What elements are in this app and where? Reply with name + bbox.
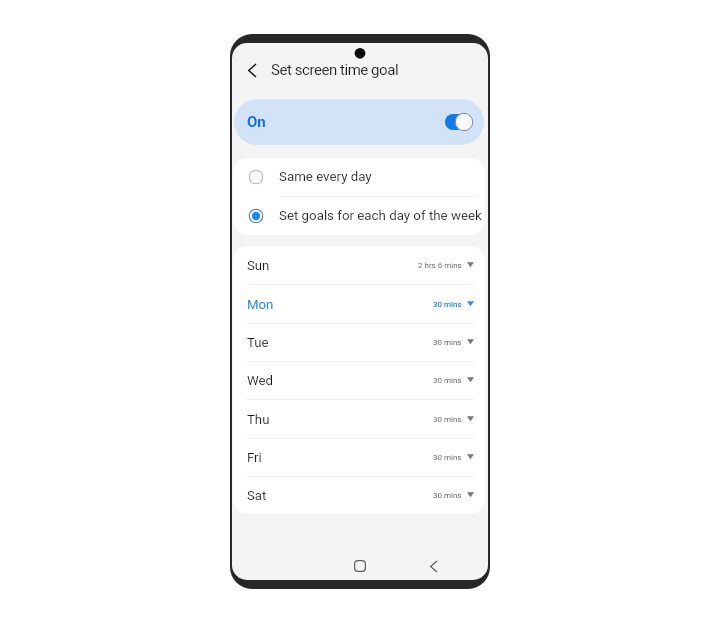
- staticText: 30 mins: [433, 338, 462, 347]
- button[interactable]: Navigate up: [239, 57, 265, 83]
- button[interactable]: Home: [347, 553, 373, 579]
- button[interactable]: Wed: [233, 362, 485, 399]
- button[interactable]: Thu: [233, 400, 485, 438]
- staticText: 30 mins: [433, 376, 462, 385]
- staticText: Thu: [247, 412, 270, 427]
- staticText: Fri: [247, 450, 262, 465]
- button[interactable]: Set goals for each day of the week: [233, 197, 485, 235]
- button[interactable]: Sun: [233, 246, 485, 284]
- staticText: Wed: [247, 373, 273, 388]
- staticText: Same every day: [279, 169, 372, 185]
- staticText: Sun: [247, 258, 270, 273]
- staticText: Set goals for each day of the week: [279, 208, 482, 224]
- staticText: Sat: [247, 488, 267, 503]
- staticText: On: [247, 113, 266, 131]
- staticText: 30 mins: [433, 453, 462, 462]
- staticText: Set screen time goal: [271, 61, 399, 79]
- button[interactable]: Same every day: [233, 158, 485, 196]
- button[interactable]: Fri: [233, 439, 485, 476]
- button[interactable]: Tue: [233, 324, 485, 361]
- staticText: Mon: [247, 297, 274, 312]
- staticText: 30 mins: [433, 491, 462, 500]
- button[interactable]: Sat: [233, 477, 485, 514]
- staticText: 2 hrs 6 mins: [418, 261, 462, 270]
- button[interactable]: Back: [420, 553, 446, 579]
- staticText: Tue: [247, 335, 269, 350]
- button[interactable]: Mon: [233, 285, 485, 323]
- staticText: 30 mins: [433, 415, 462, 424]
- button[interactable]: On: [234, 99, 484, 145]
- staticText: 30 mins: [433, 300, 462, 309]
